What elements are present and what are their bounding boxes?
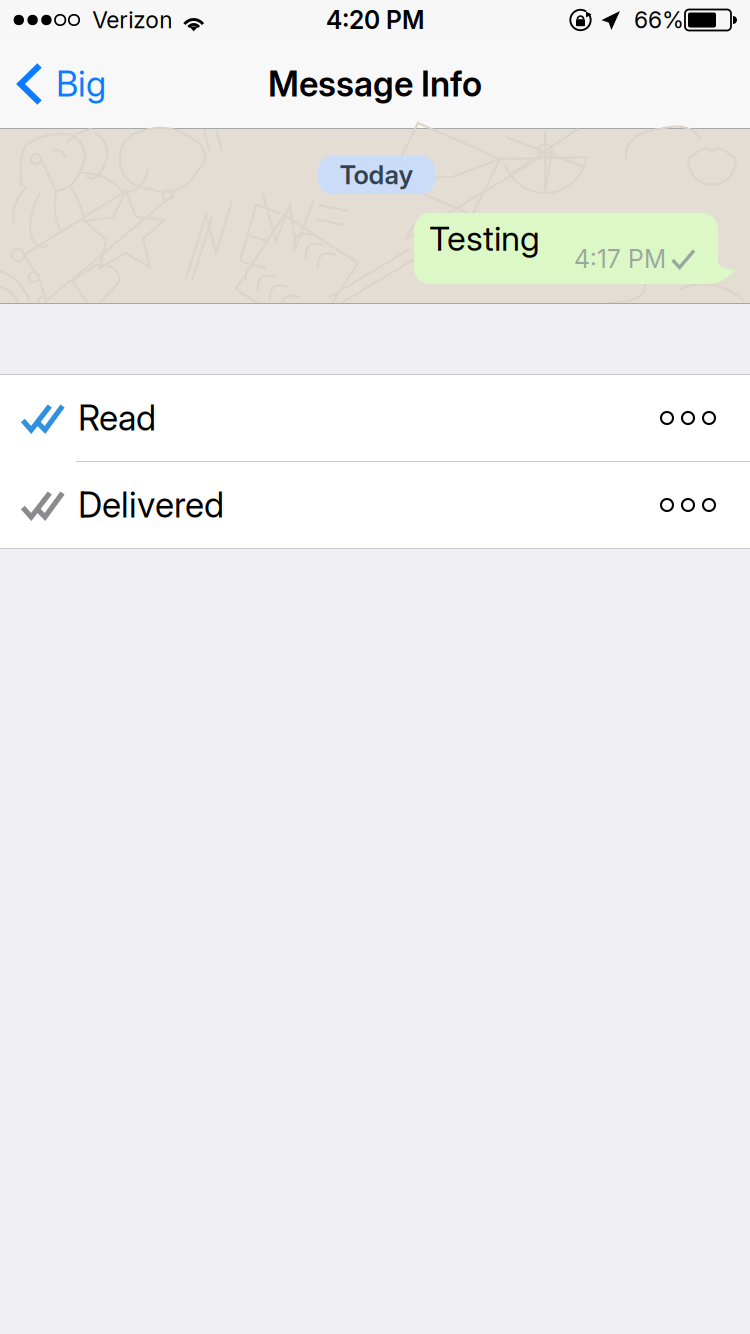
staticText: 66% [634,6,684,34]
staticText: Verizon [92,6,172,34]
button[interactable]: Delivered [0,462,750,548]
staticText: 4:20 PM [326,5,424,35]
staticText: Today [339,159,413,190]
staticText: Testing [429,218,540,259]
staticText: Big [56,63,106,105]
staticText: Read [78,397,156,439]
staticText: Delivered [78,484,224,526]
staticText: Message Info [268,63,482,105]
button[interactable]: Read [0,375,750,461]
button[interactable]: Big [0,40,122,128]
staticText: 4:17 PM [574,244,666,274]
